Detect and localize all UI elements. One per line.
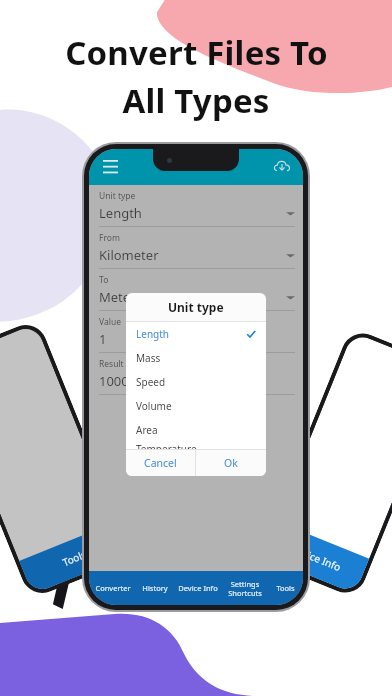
- button[interactable]: Area: [126, 418, 266, 442]
- button[interactable]: Temperature: [126, 442, 266, 449]
- staticText: 1: [99, 330, 295, 348]
- staticText: Unit type: [99, 190, 136, 202]
- button[interactable]: Open navigation menu: [97, 154, 123, 180]
- staticText: Length: [99, 204, 286, 222]
- staticText: Converter: [95, 583, 131, 593]
- button[interactable]: History: [136, 571, 174, 605]
- staticText: All Types: [122, 78, 270, 123]
- button[interactable]: Length: [126, 322, 266, 346]
- staticText: Length: [136, 327, 246, 341]
- button[interactable]: Converter: [89, 571, 136, 605]
- staticText: Speed: [136, 375, 256, 389]
- staticText: From: [99, 232, 120, 244]
- staticText: Meter: [99, 288, 286, 306]
- button[interactable]: Download: [269, 154, 295, 180]
- staticText: History: [142, 583, 168, 593]
- staticText: Device Info: [178, 583, 218, 593]
- button[interactable]: Result: [89, 353, 303, 395]
- button[interactable]: Tools: [268, 571, 303, 605]
- button[interactable]: Unit type: [89, 185, 303, 227]
- button[interactable]: Settings Shortcuts: [221, 571, 268, 605]
- staticText: New: [134, 399, 151, 410]
- staticText: 1000 Met: [99, 372, 295, 390]
- button[interactable]: Speed: [126, 370, 266, 394]
- button[interactable]: Mass: [126, 346, 266, 370]
- staticText: Tools: [276, 583, 295, 593]
- staticText: Volume: [136, 399, 256, 413]
- staticText: Cancel: [144, 456, 177, 470]
- staticText: Value: [99, 316, 121, 328]
- staticText: Result: [99, 358, 124, 370]
- button[interactable]: history: [196, 399, 303, 426]
- button[interactable]: Value: [89, 311, 303, 353]
- button[interactable]: Ok: [196, 450, 266, 476]
- staticText: To: [99, 274, 109, 286]
- button[interactable]: To: [89, 269, 303, 311]
- staticText: Unit type: [168, 299, 224, 315]
- button[interactable]: From: [89, 227, 303, 269]
- staticText: Settings Shortcuts: [228, 579, 262, 598]
- button[interactable]: Device Info: [174, 571, 221, 605]
- staticText: Area: [136, 423, 256, 437]
- staticText: Kilometer: [99, 246, 286, 264]
- button[interactable]: Volume: [126, 394, 266, 418]
- staticText: Ok: [224, 456, 238, 470]
- button[interactable]: New: [89, 399, 196, 426]
- button[interactable]: Cancel: [126, 450, 195, 476]
- staticText: Mass: [136, 351, 256, 365]
- staticText: Device Info: [289, 541, 343, 574]
- staticText: Temperature: [136, 442, 197, 449]
- staticText: Convert Files To: [65, 30, 328, 75]
- staticText: Tools: [60, 547, 89, 569]
